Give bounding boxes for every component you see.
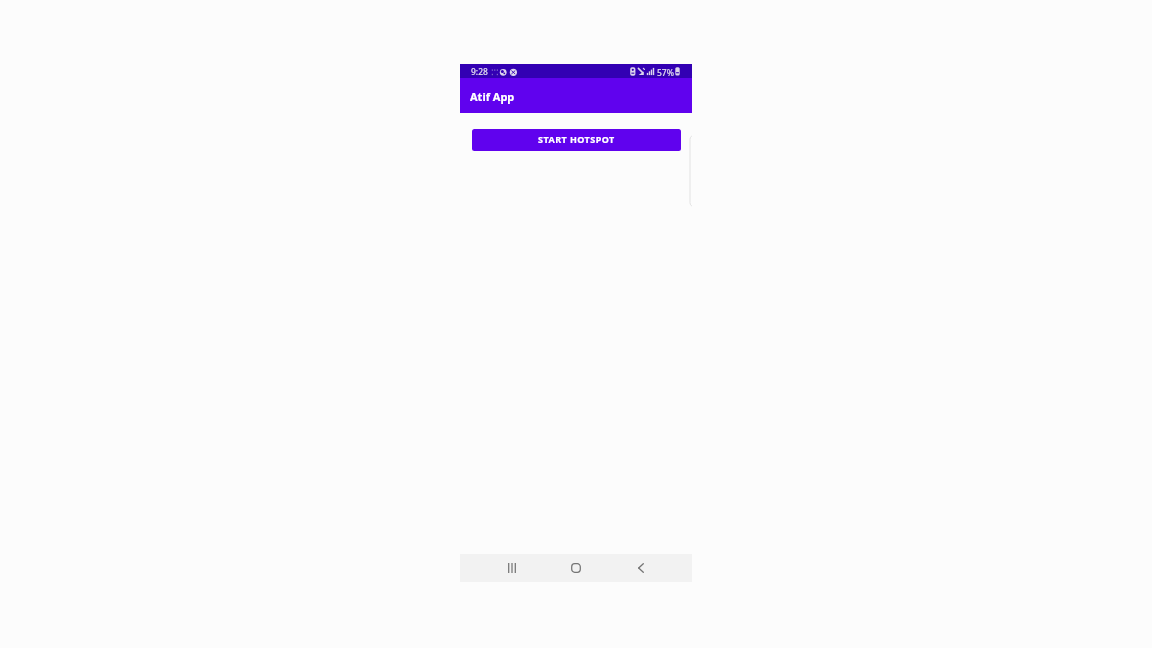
button[interactable]: Back	[621, 554, 661, 582]
button[interactable]: Recents	[492, 554, 532, 582]
staticText: 9:28	[471, 66, 488, 78]
staticText: 57%	[657, 67, 674, 79]
staticText: START HOTSPOT	[538, 133, 615, 145]
button[interactable]: START HOTSPOT	[472, 129, 681, 151]
button[interactable]: Home	[556, 554, 596, 582]
staticText: Atif App	[470, 89, 515, 104]
